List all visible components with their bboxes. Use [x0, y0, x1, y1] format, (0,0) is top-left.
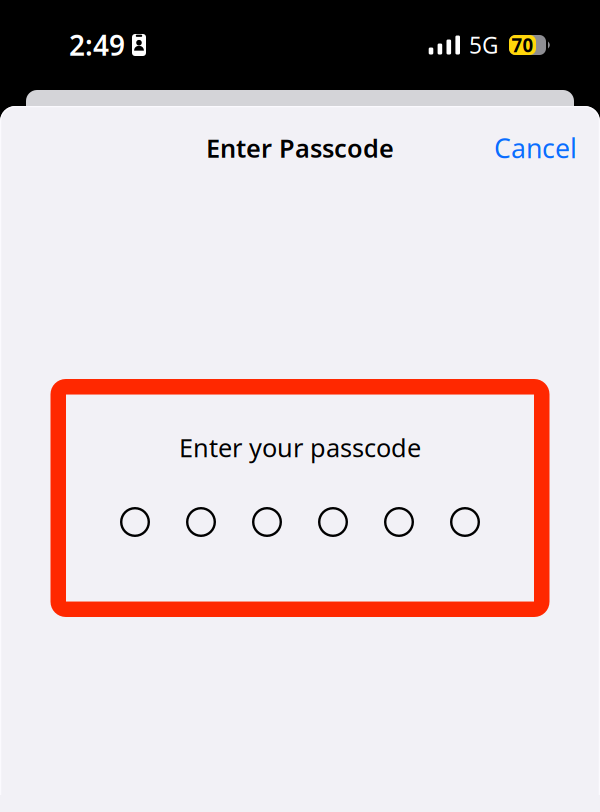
staticText: Enter your passcode — [179, 431, 421, 464]
staticText: Cancel — [494, 130, 577, 166]
staticText: 5G — [469, 30, 499, 60]
button[interactable]: Cancel — [482, 120, 589, 176]
staticText: Enter Passcode — [206, 131, 394, 165]
button[interactable]: Enter your passcode — [50, 379, 549, 617]
staticText: 2:49 — [69, 26, 125, 64]
staticText: 70 — [511, 33, 533, 57]
